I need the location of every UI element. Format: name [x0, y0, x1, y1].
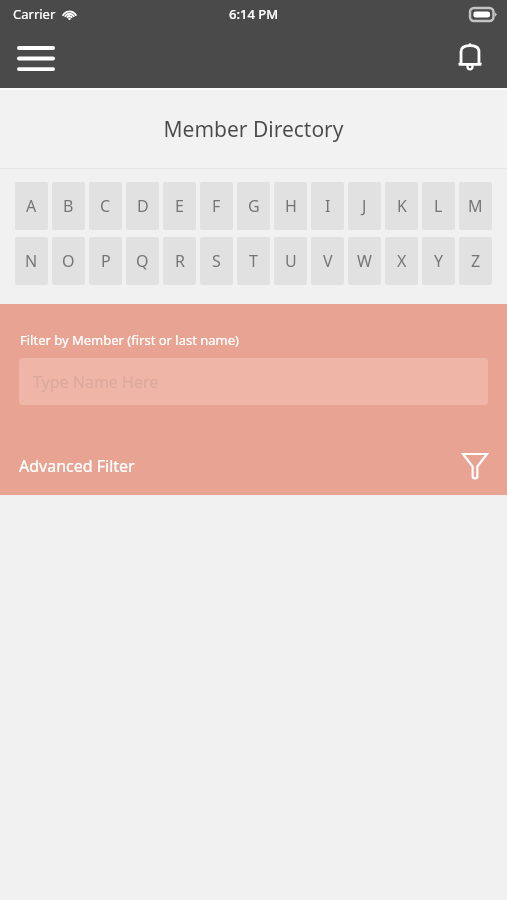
button[interactable]: S [200, 237, 233, 285]
staticText: M [468, 195, 483, 217]
button[interactable]: Menu [6, 31, 66, 85]
staticText: Advanced Filter [19, 455, 135, 477]
staticText: Q [136, 250, 149, 272]
staticText: I [325, 195, 331, 217]
staticText: E [175, 195, 184, 217]
button[interactable]: U [274, 237, 307, 285]
staticText: U [285, 250, 297, 272]
button[interactable]: Q [126, 237, 159, 285]
staticText: Carrier [13, 5, 56, 23]
staticText: J [362, 195, 367, 217]
button[interactable]: G [237, 182, 270, 230]
staticText: N [25, 250, 38, 272]
staticText: R [175, 250, 185, 272]
staticText: D [137, 195, 149, 217]
button[interactable]: K [385, 182, 418, 230]
staticText: F [212, 195, 221, 217]
staticText: H [285, 195, 297, 217]
staticText: Type Name Here [33, 371, 159, 393]
button[interactable]: H [274, 182, 307, 230]
staticText: Filter by Member (first or last name) [20, 331, 239, 349]
button[interactable]: A [15, 182, 48, 230]
button[interactable]: W [348, 237, 381, 285]
staticText: Y [434, 250, 444, 272]
other: Advanced Filter [462, 451, 488, 481]
button[interactable]: D [126, 182, 159, 230]
button[interactable]: V [311, 237, 344, 285]
staticText: S [212, 250, 221, 272]
staticText: O [62, 250, 75, 272]
button[interactable]: L [422, 182, 455, 230]
button[interactable]: I [311, 182, 344, 230]
staticText: Member Directory [163, 115, 344, 144]
button[interactable]: N [15, 237, 48, 285]
button[interactable]: E [163, 182, 196, 230]
button[interactable]: Y [422, 237, 455, 285]
button[interactable]: X [385, 237, 418, 285]
staticText: A [26, 195, 37, 217]
staticText: K [397, 195, 407, 217]
staticText: V [323, 250, 333, 272]
button[interactable]: C [89, 182, 122, 230]
button[interactable]: F [200, 182, 233, 230]
button[interactable]: J [348, 182, 381, 230]
staticText: X [397, 250, 407, 272]
staticText: Z [471, 250, 481, 272]
button[interactable]: Advanced Filter [0, 437, 507, 495]
button[interactable]: O [52, 237, 85, 285]
staticText: G [248, 195, 260, 217]
button[interactable]: M [459, 182, 492, 230]
staticText: W [357, 250, 372, 272]
button[interactable]: P [89, 237, 122, 285]
staticText: L [434, 195, 443, 217]
staticText: P [101, 250, 111, 272]
button[interactable]: R [163, 237, 196, 285]
button[interactable]: Notifications [445, 31, 495, 85]
staticText: 6:14 PM [229, 5, 279, 23]
staticText: B [63, 195, 74, 217]
staticText: C [100, 195, 111, 217]
button[interactable]: B [52, 182, 85, 230]
staticText: T [249, 250, 258, 272]
button[interactable]: Z [459, 237, 492, 285]
button[interactable]: T [237, 237, 270, 285]
